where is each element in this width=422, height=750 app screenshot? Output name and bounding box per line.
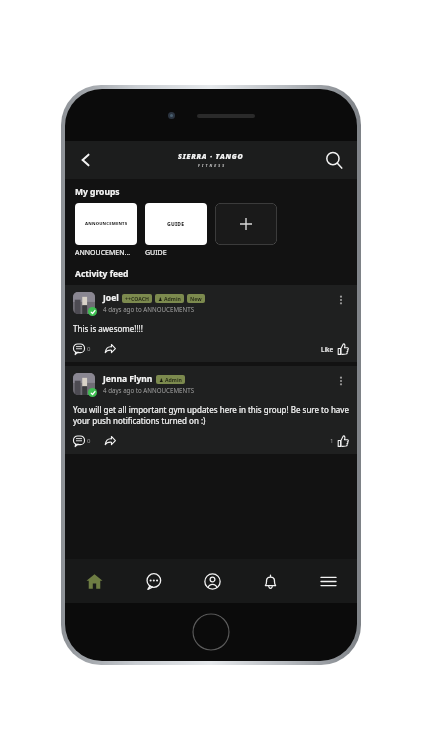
button[interactable]: ANNOUNCEMENTS [75, 203, 137, 258]
staticText: ++COACH [125, 295, 149, 302]
button[interactable]: Search [317, 143, 351, 177]
button[interactable]: More options [333, 292, 349, 308]
button[interactable]: Messages [124, 559, 183, 603]
staticText: ♟ Admin [159, 376, 182, 383]
staticText: 4 days ago to ANNOUCEMENTS [103, 305, 195, 313]
staticText: 4 days ago to ANNOUCEMENTS [103, 386, 195, 394]
staticText: ANNOUNCEMENTS [85, 221, 128, 227]
staticText: 0 [87, 345, 91, 353]
staticText: ANNOUCEMEN... [75, 248, 131, 258]
button[interactable]: Share [103, 434, 117, 448]
button[interactable]: Comment [73, 343, 91, 355]
staticText: GUIDE [145, 248, 167, 258]
staticText: My groups [75, 186, 120, 198]
staticText: New [190, 295, 202, 302]
button[interactable]: Like [321, 343, 349, 355]
staticText: 1 [330, 437, 334, 445]
staticText: This is awesome!!!! [73, 323, 143, 334]
staticText: You will get all important gym updates h… [73, 404, 349, 426]
button[interactable]: Jenna Flynn [65, 366, 357, 454]
staticText: Like [321, 345, 334, 354]
staticText: Activity feed [75, 268, 129, 280]
button[interactable]: Add group [215, 203, 277, 245]
staticText: Jenna Flynn [103, 373, 153, 385]
staticText: Joel [103, 292, 119, 304]
button[interactable]: Share [103, 342, 117, 356]
button[interactable]: More options [333, 373, 349, 389]
staticText: ♟ Admin [158, 295, 181, 302]
staticText: F I T N E S S [198, 163, 225, 168]
button[interactable]: Notifications [241, 559, 299, 603]
button[interactable]: Comment [73, 435, 91, 447]
button[interactable]: GUIDE [145, 203, 207, 258]
staticText: 0 [87, 437, 91, 445]
staticText: GUIDE [167, 221, 185, 228]
button[interactable]: Joel [65, 285, 357, 362]
staticText: SIERRA · TANGO [178, 152, 244, 162]
button[interactable]: Back [69, 143, 103, 177]
button[interactable]: Profile [183, 559, 241, 603]
button[interactable]: Menu [299, 559, 357, 603]
button[interactable]: Like [330, 435, 349, 447]
button[interactable]: Home [65, 559, 124, 603]
